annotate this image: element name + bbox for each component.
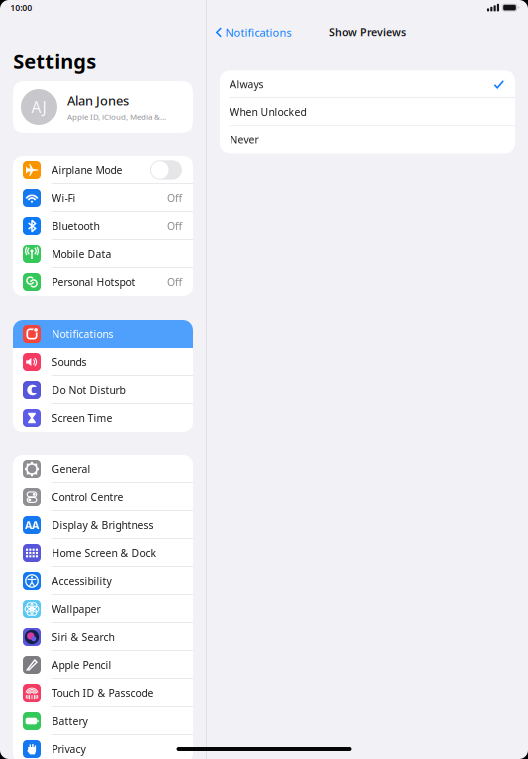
button[interactable]: Personal Hotspot xyxy=(13,268,193,296)
staticText: Alan Jones xyxy=(67,92,129,109)
staticText: Off xyxy=(167,191,182,205)
staticText: Settings xyxy=(13,47,96,74)
staticText: Do Not Disturb xyxy=(51,383,125,397)
button[interactable]: Always xyxy=(220,70,515,98)
staticText: Display & Brightness xyxy=(51,518,153,532)
button[interactable]: General xyxy=(13,455,193,483)
staticText: Battery xyxy=(51,714,87,728)
staticText: Siri & Search xyxy=(51,630,114,644)
staticText: General xyxy=(51,462,90,476)
staticText: Notifications xyxy=(51,327,113,341)
staticText: Privacy xyxy=(51,742,85,756)
button[interactable]: Battery xyxy=(13,707,193,735)
staticText: Control Centre xyxy=(51,490,123,504)
button[interactable]: Notifications xyxy=(212,20,295,45)
staticText: Wi-Fi xyxy=(51,191,75,205)
staticText: Touch ID & Passcode xyxy=(51,686,153,700)
staticText: Off xyxy=(167,275,182,289)
button[interactable]: Sounds xyxy=(13,348,193,376)
button[interactable]: Mobile Data xyxy=(13,240,193,268)
staticText: AA xyxy=(25,518,39,532)
button[interactable]: Wallpaper xyxy=(13,595,193,623)
staticText: AJ xyxy=(31,97,46,117)
button[interactable]: Control Centre xyxy=(13,483,193,511)
staticText: Airplane Mode xyxy=(51,163,122,177)
button[interactable]: Touch ID & Passcode xyxy=(13,679,193,707)
button[interactable]: Bluetooth xyxy=(13,212,193,240)
button[interactable]: Screen Time xyxy=(13,404,193,432)
staticText: Show Previews xyxy=(329,25,406,39)
button[interactable]: Siri & Search xyxy=(13,623,193,651)
staticText: 10:00 xyxy=(10,2,32,13)
staticText: Mobile Data xyxy=(51,247,111,261)
button[interactable]: AA xyxy=(13,511,193,539)
button[interactable]: AJ xyxy=(13,81,193,133)
staticText: Screen Time xyxy=(51,411,112,425)
staticText: Apple Pencil xyxy=(51,658,111,672)
button[interactable]: Airplane Mode xyxy=(13,156,193,184)
button[interactable]: Apple Pencil xyxy=(13,651,193,679)
button[interactable]: Wi-Fi xyxy=(13,184,193,212)
staticText: Apple ID, iCloud, Media &... xyxy=(67,111,166,122)
staticText: Wallpaper xyxy=(51,602,100,616)
staticText: Personal Hotspot xyxy=(51,275,135,289)
staticText: Sounds xyxy=(51,355,86,369)
staticText: Off xyxy=(167,219,182,233)
staticText: When Unlocked xyxy=(229,105,306,119)
button[interactable]: When Unlocked xyxy=(220,98,515,126)
staticText: Accessibility xyxy=(51,574,111,588)
staticText: Bluetooth xyxy=(51,219,99,233)
staticText: Notifications xyxy=(225,25,291,40)
button[interactable]: Do Not Disturb xyxy=(13,376,193,404)
staticText: Home Screen & Dock xyxy=(51,546,156,560)
button[interactable]: Never xyxy=(220,126,515,153)
button[interactable]: Accessibility xyxy=(13,567,193,595)
button[interactable]: Home Screen & Dock xyxy=(13,539,193,567)
staticText: Never xyxy=(229,132,258,147)
button[interactable]: Notifications xyxy=(13,320,193,348)
button[interactable]: Privacy xyxy=(13,735,193,759)
staticText: Always xyxy=(229,77,263,91)
